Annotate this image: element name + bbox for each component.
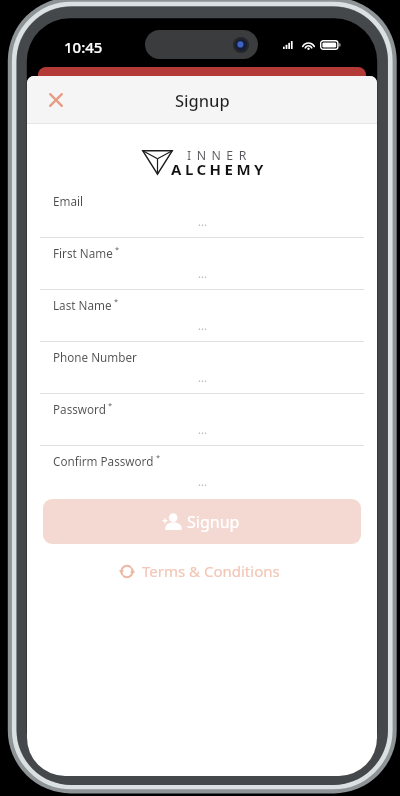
staticText: Terms & Conditions [142,561,280,581]
staticText: * [154,452,161,462]
staticText: First Name [53,245,113,261]
button[interactable]: Email [40,186,364,237]
staticText: ... [198,318,207,333]
staticText: ... [198,474,207,489]
button[interactable]: Close [45,89,67,111]
button[interactable]: First Name [40,238,364,289]
staticText: 10:45 [64,37,103,57]
staticText: * [106,400,113,410]
staticText: INNER [187,147,252,164]
staticText: Signup [175,89,230,111]
button[interactable]: Confirm Password [40,446,364,497]
staticText: ... [198,266,207,281]
staticText: * [112,296,119,306]
button[interactable]: Phone Number [40,342,364,393]
button[interactable]: Last Name [40,290,364,341]
staticText: ALCHEMY [171,159,268,179]
staticText: Confirm Password [53,453,154,469]
staticText: Email [53,193,84,209]
staticText: Signup [187,511,240,533]
staticText: Password [53,401,106,417]
staticText: ... [198,422,207,437]
staticText: ... [198,370,207,385]
button[interactable]: Password [40,394,364,445]
button[interactable]: Terms & Conditions [36,561,360,581]
staticText: Last Name [53,297,112,313]
staticText: Phone Number [53,349,137,365]
staticText: ... [198,214,207,229]
button[interactable]: Signup [43,499,361,544]
staticText: * [113,244,120,254]
